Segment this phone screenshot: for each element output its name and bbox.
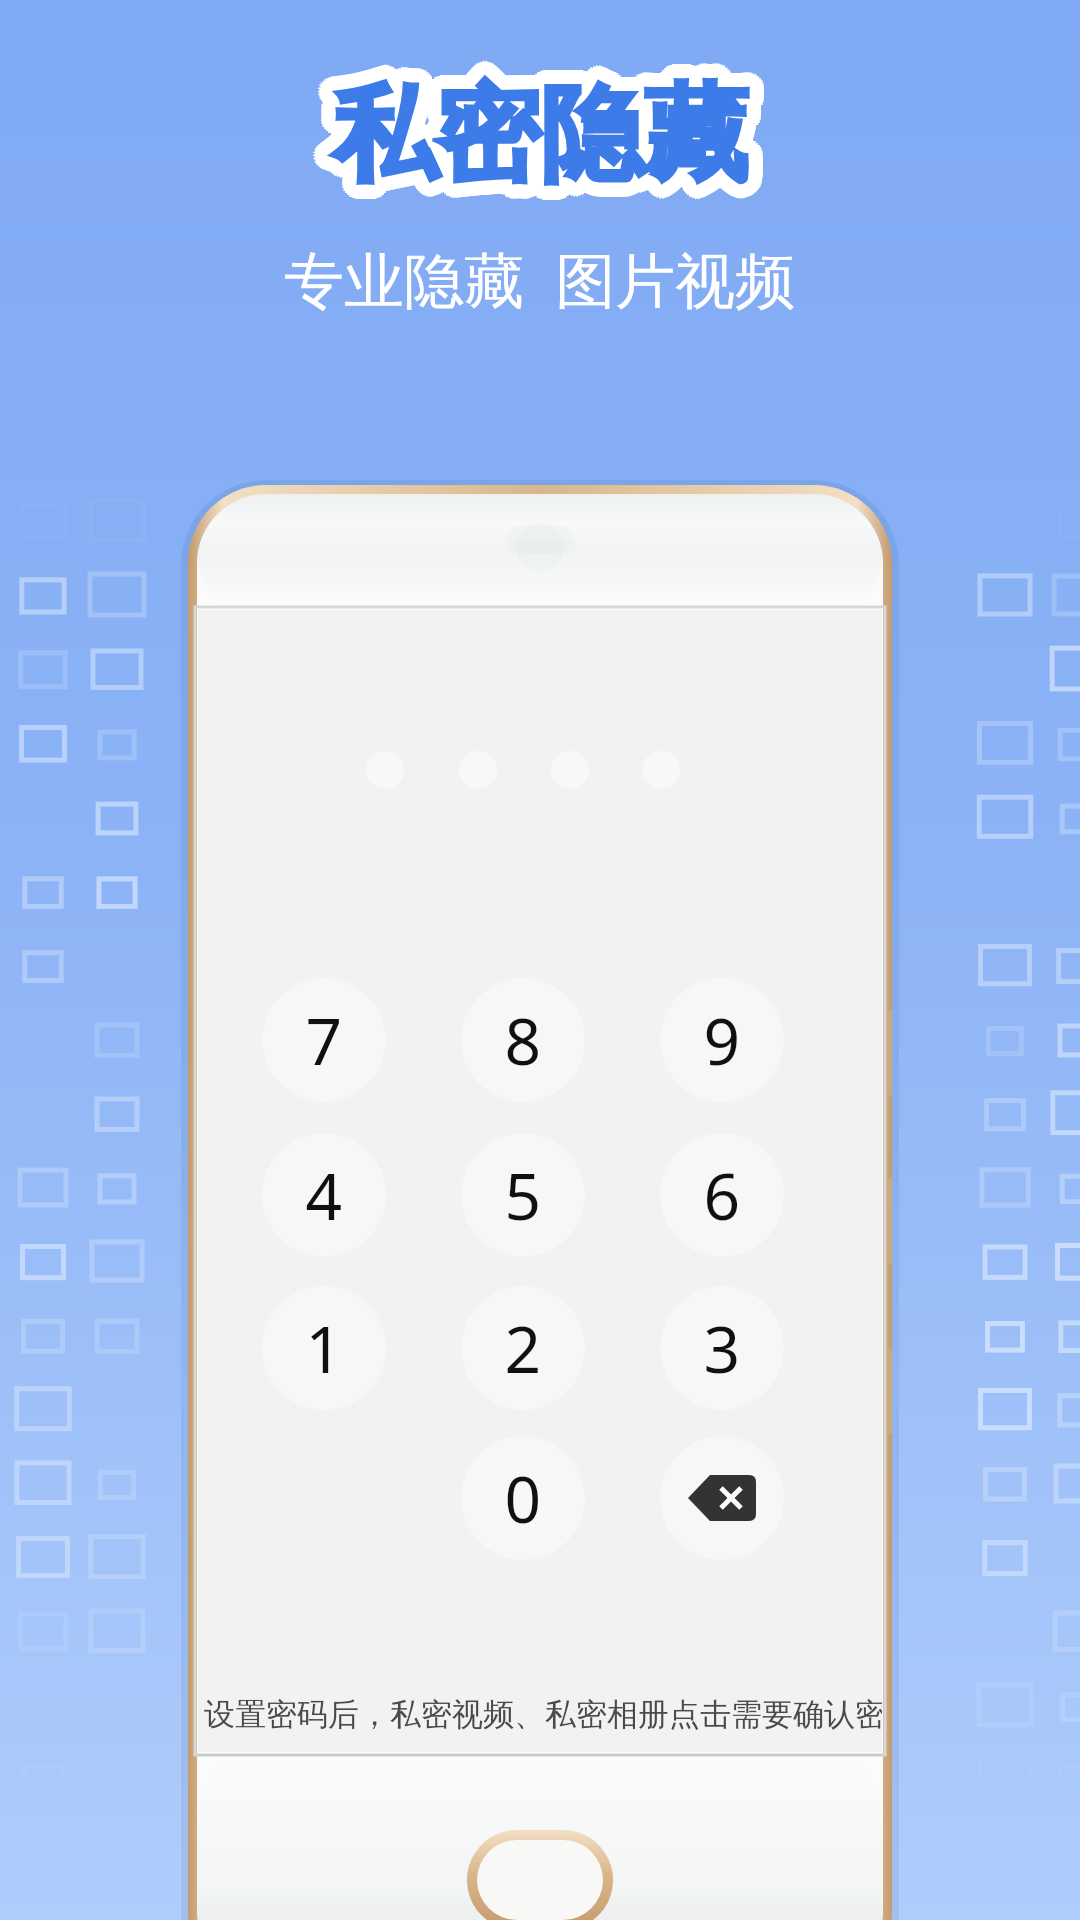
button[interactable] (660, 978, 784, 1102)
button[interactable] (461, 1436, 585, 1560)
button[interactable] (262, 1286, 386, 1410)
button[interactable] (660, 1133, 784, 1257)
button[interactable] (262, 1133, 386, 1257)
button[interactable] (660, 1286, 784, 1410)
button[interactable] (461, 1133, 585, 1257)
button[interactable] (461, 978, 585, 1102)
button[interactable]: Backspace (660, 1436, 784, 1560)
button[interactable] (262, 978, 386, 1102)
button[interactable] (461, 1286, 585, 1410)
